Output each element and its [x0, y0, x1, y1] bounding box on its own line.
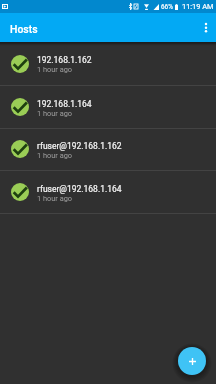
- staticText: 1 hour ago: [37, 65, 73, 74]
- staticText: 1 hour ago: [37, 151, 73, 160]
- button[interactable]: rfuser@192.168.1.162: [0, 128, 216, 170]
- staticText: Hosts: [10, 23, 38, 35]
- staticText: 1 hour ago: [37, 194, 73, 203]
- button[interactable]: 192.168.1.162: [0, 42, 216, 85]
- staticText: 66%: [161, 3, 173, 11]
- button[interactable]: More options: [193, 16, 216, 39]
- staticText: 192.168.1.162: [37, 55, 92, 65]
- staticText: rfuser@192.168.1.164: [37, 184, 122, 194]
- staticText: 192.168.1.164: [37, 99, 92, 109]
- staticText: rfuser@192.168.1.162: [37, 141, 122, 151]
- button[interactable]: Add host: [178, 347, 206, 375]
- button[interactable]: 192.168.1.164: [0, 86, 216, 128]
- staticText: 1 hour ago: [37, 109, 73, 118]
- staticText: 11:19 AM: [182, 2, 214, 11]
- button[interactable]: rfuser@192.168.1.164: [0, 171, 216, 213]
